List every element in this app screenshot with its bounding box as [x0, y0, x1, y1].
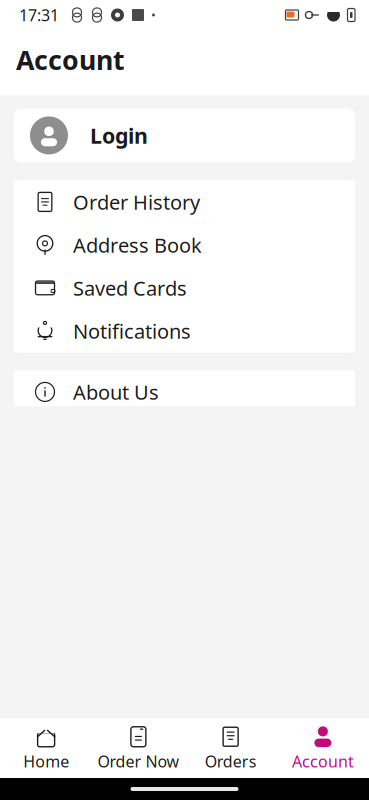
- staticText: Order History: [73, 189, 200, 215]
- button[interactable]: Notifications: [14, 309, 355, 352]
- staticText: 17:31: [19, 4, 59, 26]
- staticText: Saved Cards: [73, 275, 187, 301]
- button[interactable]: Login: [14, 108, 355, 162]
- button[interactable]: Account: [277, 718, 369, 778]
- staticText: Order Now: [97, 751, 179, 772]
- staticText: Address Book: [73, 232, 202, 258]
- staticText: Orders: [205, 751, 257, 772]
- button[interactable]: Order History: [14, 180, 355, 223]
- button[interactable]: Address Book: [14, 223, 355, 266]
- button[interactable]: Home: [0, 718, 92, 778]
- staticText: Account: [292, 751, 354, 772]
- staticText: Notifications: [73, 318, 191, 344]
- button[interactable]: About Us: [14, 370, 355, 413]
- button[interactable]: Saved Cards: [14, 266, 355, 309]
- staticText: About Us: [73, 379, 159, 405]
- staticText: Account: [16, 42, 125, 77]
- staticText: Login: [90, 121, 148, 149]
- button[interactable]: Order Now: [92, 718, 184, 778]
- staticText: Home: [23, 751, 69, 772]
- button[interactable]: Orders: [184, 718, 277, 778]
